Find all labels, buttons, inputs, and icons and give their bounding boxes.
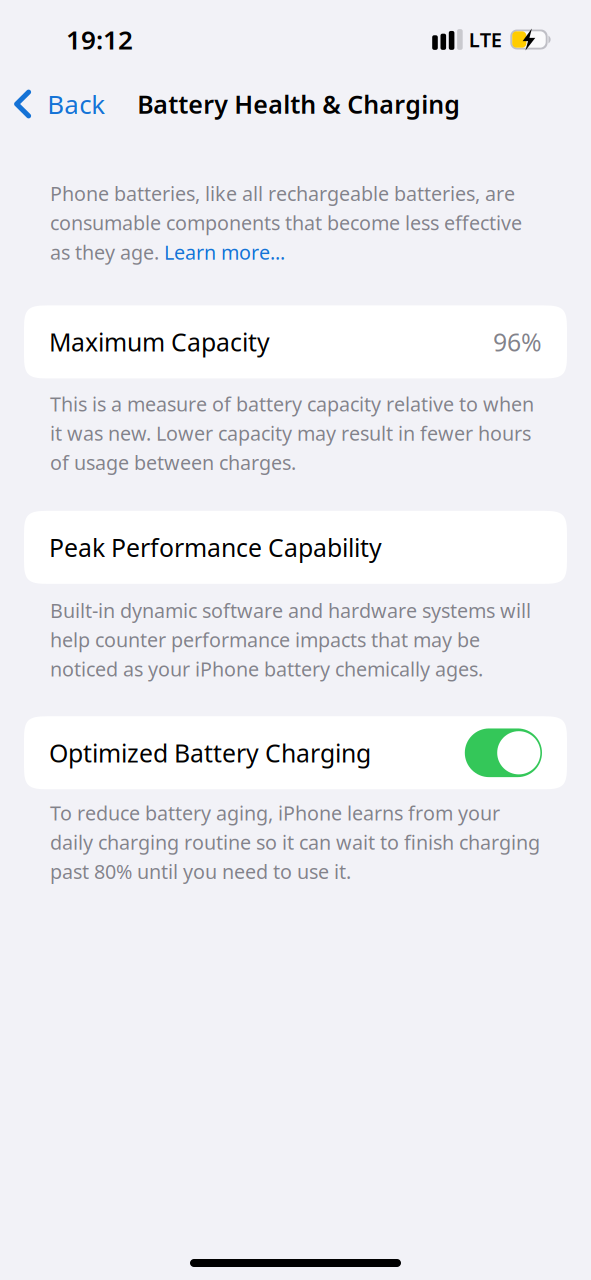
staticText: Optimized Battery Charging (49, 736, 371, 770)
staticText: 96% (493, 325, 542, 359)
staticText: LTE (469, 26, 502, 53)
staticText: Battery Health & Charging (137, 87, 460, 121)
button[interactable]: Peak Performance Capability (0, 511, 591, 584)
staticText: To reduce battery aging, iPhone learns f… (50, 799, 540, 885)
staticText: 19:12 (66, 22, 133, 57)
button[interactable]: Maximum Capacity (0, 305, 591, 378)
staticText: Phone batteries, like all rechargeable b… (50, 180, 522, 265)
staticText: Maximum Capacity (49, 325, 270, 359)
staticText: Back (47, 86, 105, 122)
staticText: Peak Performance Capability (49, 530, 382, 564)
button[interactable]: Back (0, 75, 117, 133)
staticText: Built-in dynamic software and hardware s… (50, 597, 531, 682)
button[interactable]: Optimized Battery Charging (465, 728, 542, 777)
staticText: This is a measure of battery capacity re… (50, 390, 534, 476)
button[interactable]: Optimized Battery Charging (0, 716, 591, 789)
